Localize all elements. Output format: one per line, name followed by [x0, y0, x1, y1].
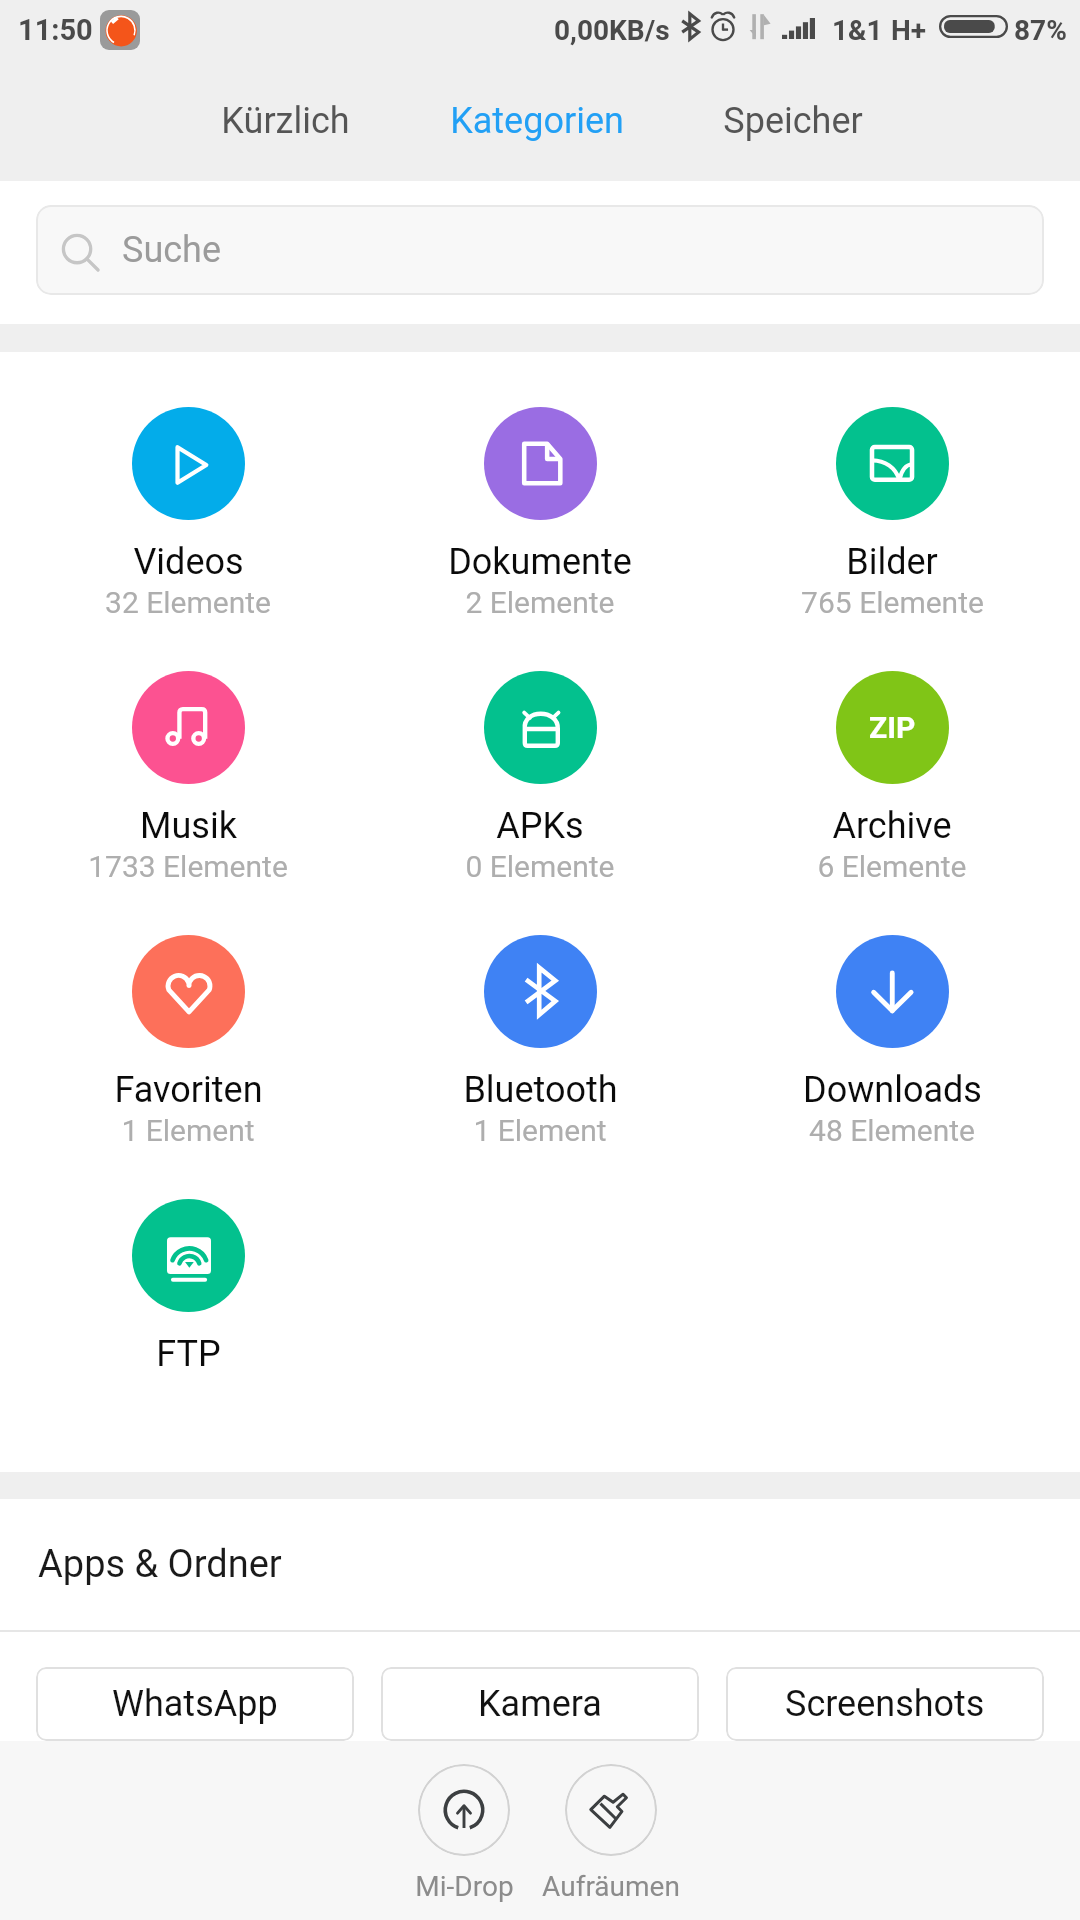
staticText: Archive	[832, 805, 952, 847]
staticText: Kategorien	[450, 100, 624, 142]
staticText: Apps & Ordner	[38, 1542, 282, 1587]
staticText: Bluetooth	[463, 1069, 618, 1111]
button[interactable]: Suche	[36, 205, 1044, 295]
staticText: 1 Element	[473, 1113, 607, 1148]
staticText: Videos	[133, 541, 244, 583]
button[interactable]: Favoriten	[12, 935, 364, 1148]
staticText: Favoriten	[114, 1069, 263, 1111]
staticText: Kamera	[478, 1683, 602, 1725]
button[interactable]: Videos	[12, 407, 364, 620]
button[interactable]: Dokumente	[364, 407, 716, 620]
staticText: 32 Elemente	[105, 585, 271, 620]
staticText: Aufräumen	[542, 1870, 680, 1903]
button[interactable]: Bluetooth	[364, 935, 716, 1148]
staticText: 765 Elemente	[801, 585, 984, 620]
button[interactable]: ZIP	[716, 671, 1068, 884]
staticText: Mi-Drop	[415, 1870, 514, 1903]
staticText: FTP	[156, 1333, 221, 1375]
button[interactable]: Musik	[12, 671, 364, 884]
staticText: 1&1	[832, 14, 883, 47]
staticText: Dokumente	[448, 541, 632, 583]
staticText: 0 Elemente	[465, 849, 615, 884]
button[interactable]: Kategorien	[387, 60, 687, 181]
button[interactable]: Bilder	[716, 407, 1068, 620]
button[interactable]: Kürzlich	[135, 60, 435, 181]
staticText: 1733 Elemente	[88, 849, 288, 884]
button[interactable]: Downloads	[716, 935, 1068, 1148]
staticText: 1 Element	[121, 1113, 255, 1148]
button[interactable]: Speicher	[643, 60, 943, 181]
staticText: WhatsApp	[112, 1683, 278, 1725]
button[interactable]: Kamera	[381, 1667, 699, 1741]
button[interactable]: Aufräumen	[565, 1764, 657, 1856]
staticText: Downloads	[803, 1069, 982, 1111]
staticText: 6 Elemente	[817, 849, 967, 884]
staticText: 0,00KB/s	[554, 14, 670, 47]
staticText: H+	[891, 14, 927, 47]
staticText: 2 Elemente	[465, 585, 615, 620]
button[interactable]: Mi-Drop	[418, 1764, 510, 1856]
button[interactable]: WhatsApp	[36, 1667, 354, 1741]
staticText: 87%	[1014, 14, 1067, 47]
staticText: Bilder	[846, 541, 938, 583]
staticText: Kürzlich	[221, 100, 350, 142]
staticText: 11:50	[18, 13, 93, 47]
button[interactable]: Screenshots	[726, 1667, 1044, 1741]
staticText: Speicher	[723, 100, 863, 142]
staticText: 48 Elemente	[809, 1113, 975, 1148]
staticText: Musik	[140, 805, 237, 847]
staticText: Screenshots	[785, 1683, 985, 1725]
button[interactable]: FTP	[12, 1199, 364, 1375]
staticText: APKs	[496, 805, 584, 847]
button[interactable]: APKs	[364, 671, 716, 884]
staticText: ZIP	[869, 710, 916, 745]
staticText: Suche	[122, 229, 221, 271]
